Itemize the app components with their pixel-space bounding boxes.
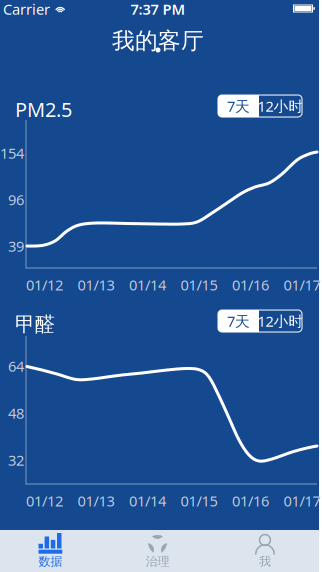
- staticText: 我的客厅: [112, 27, 204, 55]
- staticText: 48: [8, 403, 24, 423]
- staticText: 数据: [38, 554, 62, 569]
- staticText: 我: [259, 554, 271, 569]
- staticText: 01/17: [283, 491, 320, 510]
- staticText: 39: [8, 236, 24, 256]
- staticText: 01/12: [26, 491, 63, 510]
- staticText: Carrier: [3, 0, 50, 19]
- staticText: 01/15: [180, 275, 217, 294]
- staticText: 01/14: [129, 491, 166, 510]
- staticText: 32: [8, 450, 24, 470]
- button[interactable]: 7天: [218, 310, 259, 332]
- staticText: 7天: [227, 96, 250, 116]
- staticText: 01/13: [77, 491, 114, 510]
- staticText: 12小时: [257, 311, 303, 331]
- button[interactable]: 7天: [218, 95, 259, 117]
- staticText: 治理: [145, 554, 169, 569]
- staticText: 7:37 PM: [130, 0, 185, 19]
- staticText: 01/12: [26, 275, 63, 294]
- button[interactable]: 我: [211, 530, 319, 572]
- staticText: 甲醛: [15, 312, 55, 337]
- button[interactable]: 数据: [0, 530, 104, 572]
- staticText: 01/13: [77, 275, 114, 294]
- staticText: PM2.5: [15, 96, 72, 123]
- staticText: 64: [8, 356, 24, 376]
- button[interactable]: 治理: [104, 530, 211, 572]
- staticText: 96: [8, 190, 24, 209]
- staticText: 01/15: [180, 491, 217, 510]
- staticText: 01/16: [232, 275, 269, 294]
- button[interactable]: 12小时: [259, 95, 302, 117]
- staticText: 154: [0, 143, 24, 163]
- button[interactable]: 12小时: [259, 310, 302, 332]
- staticText: 01/14: [129, 275, 166, 294]
- staticText: 7天: [227, 311, 250, 331]
- staticText: 01/16: [232, 491, 269, 510]
- staticText: 12小时: [257, 96, 303, 116]
- staticText: 01/17: [283, 275, 320, 294]
